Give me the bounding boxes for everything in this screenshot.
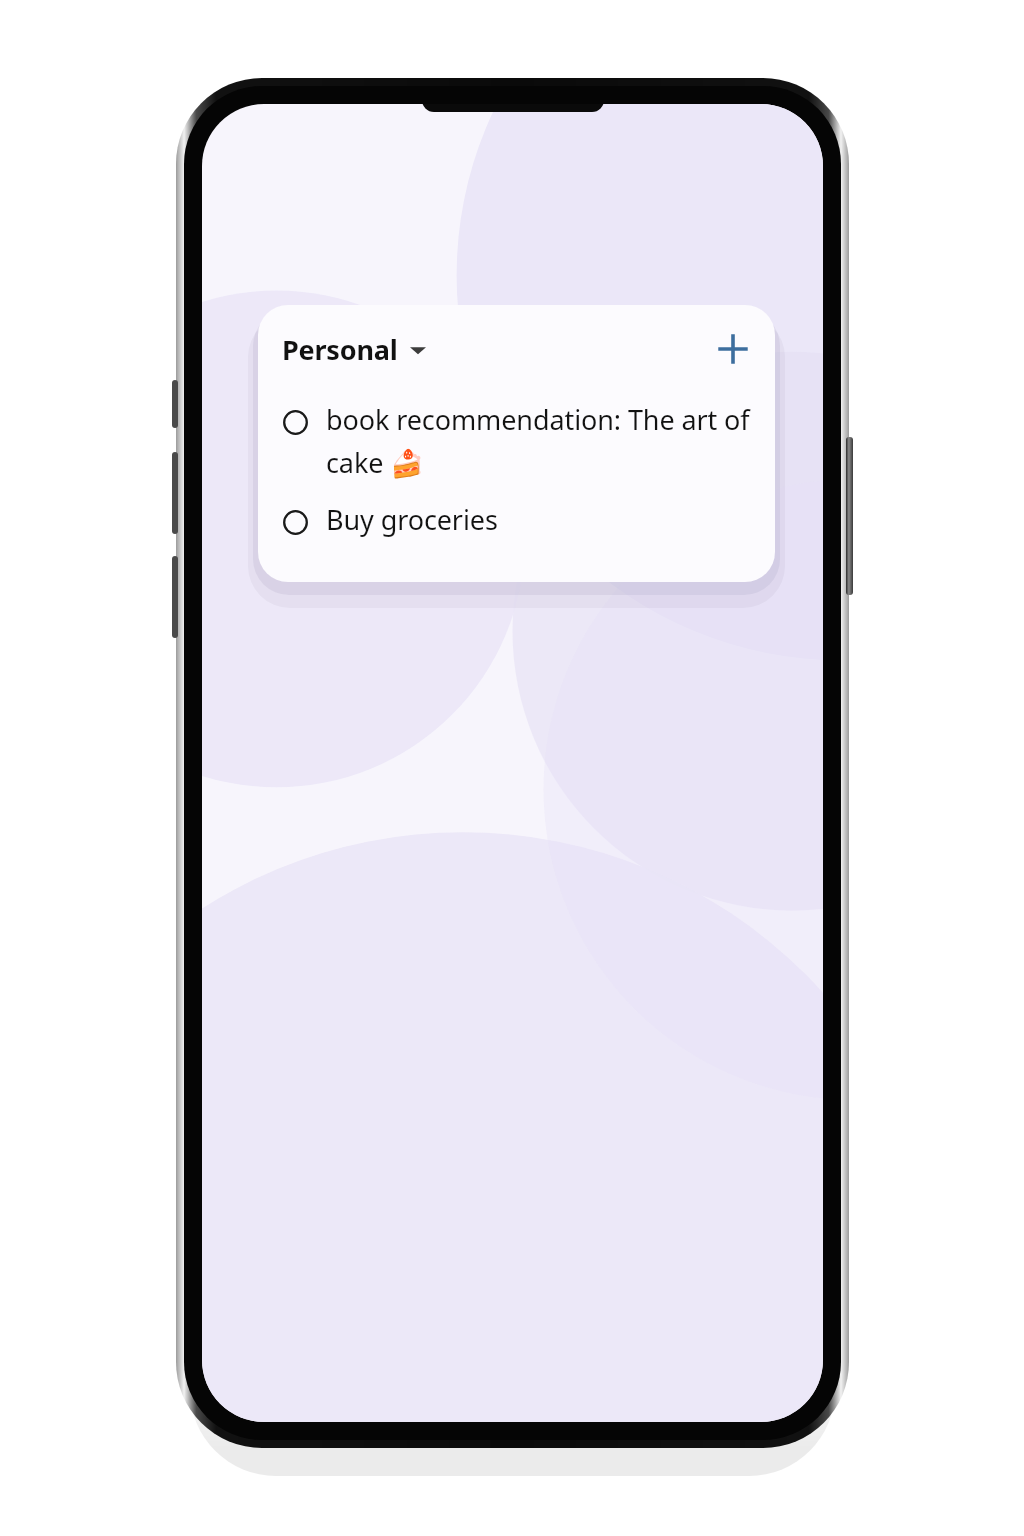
button[interactable]: Personal: [280, 325, 428, 374]
staticText: Buy groceries: [326, 501, 498, 538]
staticText: Personal: [282, 331, 398, 368]
staticText: book recommendation: The art of cake 🍰: [326, 401, 751, 481]
button[interactable]: Buy groceries: [258, 501, 775, 542]
button[interactable]: book recommendation: The art of cake 🍰: [258, 393, 775, 485]
button[interactable]: Add task: [707, 323, 759, 375]
